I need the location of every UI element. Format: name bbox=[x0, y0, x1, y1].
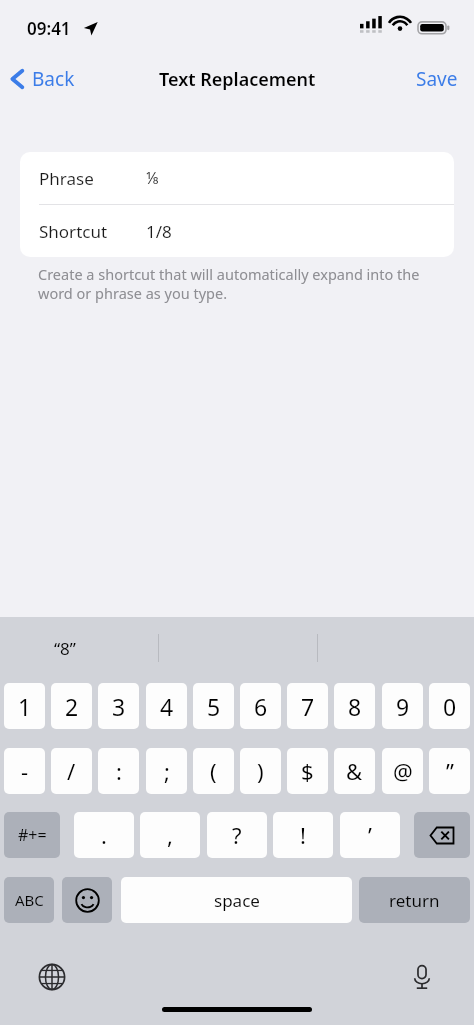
button[interactable]: ; bbox=[146, 748, 187, 794]
staticText: 9 bbox=[396, 691, 410, 722]
staticText: Text Replacement bbox=[159, 67, 316, 92]
staticText: ABC bbox=[15, 890, 44, 910]
staticText: 2 bbox=[65, 691, 79, 722]
button[interactable]: 6 bbox=[240, 683, 281, 729]
button[interactable]: Phrase bbox=[20, 152, 454, 204]
staticText: Phrase bbox=[39, 167, 94, 190]
staticText: ? bbox=[232, 820, 242, 850]
staticText: 1/8 bbox=[146, 220, 172, 243]
staticText: 0 bbox=[443, 691, 457, 722]
button[interactable]: 0 bbox=[429, 683, 470, 729]
button[interactable]: return bbox=[359, 877, 470, 923]
staticText: ) bbox=[257, 756, 264, 786]
button[interactable]: , bbox=[140, 812, 200, 858]
staticText: ! bbox=[300, 820, 306, 850]
button[interactable]: 4 bbox=[146, 683, 187, 729]
button[interactable]: 1 bbox=[4, 683, 45, 729]
staticText: $ bbox=[301, 756, 314, 786]
staticText: 7 bbox=[301, 691, 315, 722]
staticText: 8 bbox=[348, 691, 362, 722]
staticText: 6 bbox=[254, 691, 268, 722]
button[interactable]: 9 bbox=[382, 683, 423, 729]
button[interactable]: / bbox=[51, 748, 92, 794]
button[interactable]: Switch keyboard language bbox=[34, 959, 70, 995]
button[interactable]: “8” bbox=[44, 633, 86, 664]
staticText: return bbox=[389, 889, 440, 912]
staticText: ( bbox=[210, 756, 217, 786]
staticText: space bbox=[214, 889, 260, 912]
button[interactable]: Emoji bbox=[62, 877, 112, 923]
staticText: 09:41 bbox=[27, 17, 71, 40]
staticText: Save bbox=[416, 66, 458, 92]
staticText: ” bbox=[446, 756, 454, 786]
staticText: , bbox=[167, 820, 173, 850]
button[interactable]: @ bbox=[382, 748, 423, 794]
button[interactable]: Save bbox=[410, 62, 464, 96]
staticText: ’ bbox=[368, 820, 372, 850]
staticText: Shortcut bbox=[39, 220, 108, 243]
staticText: 5 bbox=[207, 691, 221, 722]
staticText: & bbox=[346, 756, 363, 786]
staticText: : bbox=[116, 756, 122, 786]
button[interactable]: . bbox=[74, 812, 134, 858]
button[interactable]: ABC bbox=[4, 877, 54, 923]
button[interactable]: 5 bbox=[193, 683, 234, 729]
button[interactable]: ( bbox=[193, 748, 234, 794]
staticText: ⅛ bbox=[146, 167, 160, 189]
staticText: #+= bbox=[18, 824, 47, 846]
button[interactable]: Dictation bbox=[404, 959, 440, 995]
button[interactable]: ! bbox=[273, 812, 333, 858]
staticText: 1 bbox=[18, 691, 32, 722]
staticText: . bbox=[101, 820, 107, 850]
button[interactable]: Shortcut bbox=[20, 205, 454, 257]
button[interactable]: Backspace bbox=[414, 812, 470, 858]
button[interactable]: Back bbox=[6, 62, 79, 96]
button[interactable]: : bbox=[98, 748, 139, 794]
button[interactable]: ? bbox=[207, 812, 267, 858]
button[interactable]: space bbox=[121, 877, 352, 923]
button[interactable]: 3 bbox=[98, 683, 139, 729]
staticText: / bbox=[67, 756, 76, 786]
button[interactable]: $ bbox=[287, 748, 328, 794]
button[interactable]: - bbox=[4, 748, 45, 794]
button[interactable]: 8 bbox=[334, 683, 375, 729]
button[interactable]: ” bbox=[429, 748, 470, 794]
button[interactable]: 7 bbox=[287, 683, 328, 729]
staticText: 3 bbox=[112, 691, 126, 722]
staticText: 4 bbox=[160, 691, 174, 722]
button[interactable]: ’ bbox=[340, 812, 400, 858]
button[interactable]: & bbox=[334, 748, 375, 794]
button[interactable]: #+= bbox=[4, 812, 60, 858]
staticText: - bbox=[21, 756, 29, 786]
button[interactable]: 2 bbox=[51, 683, 92, 729]
staticText: ; bbox=[164, 756, 170, 786]
staticText: Create a shortcut that will automaticall… bbox=[38, 264, 428, 303]
staticText: Back bbox=[32, 66, 75, 92]
button[interactable]: ) bbox=[240, 748, 281, 794]
staticText: @ bbox=[393, 756, 413, 786]
